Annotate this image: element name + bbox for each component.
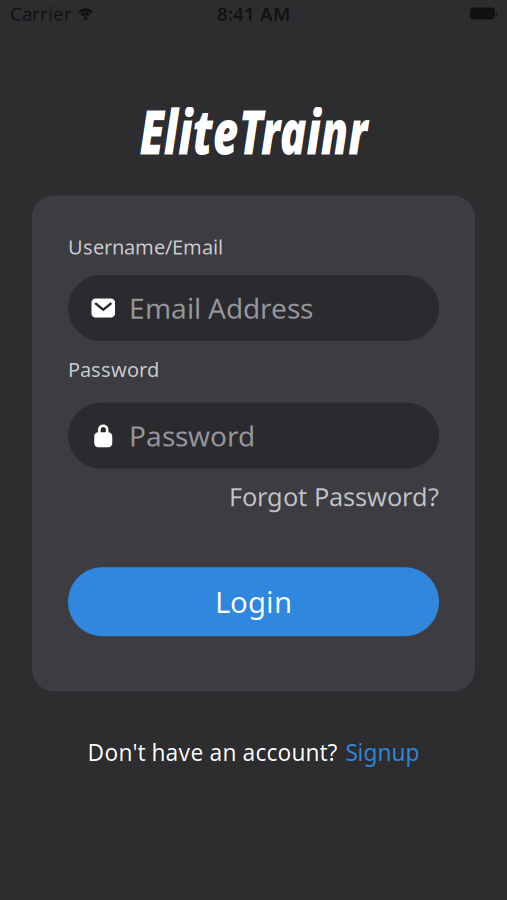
button[interactable]: Forgot Password? [229,480,439,513]
button[interactable]: Signup [345,737,419,767]
staticText: Forgot Password? [229,480,439,513]
staticText: Carrier [10,1,72,26]
staticText: Signup [345,737,419,767]
staticText: Password [68,356,159,383]
staticText: EliteTrainr [95,90,412,171]
staticText: Password [129,417,255,454]
staticText: Don't have an account? [87,737,337,767]
staticText: Login [215,582,292,621]
staticText: Username/Email [68,233,223,260]
staticText: 8:41 AM [217,1,290,26]
button[interactable]: Login [68,567,439,636]
staticText: Email Address [129,289,313,327]
